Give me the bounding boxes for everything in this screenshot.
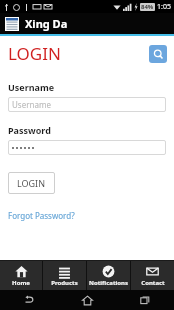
button[interactable]: Home [0, 261, 42, 290]
button[interactable]: Products [43, 261, 86, 290]
button[interactable]: Forgot Password? [8, 210, 75, 221]
button[interactable]: Contact [131, 261, 174, 290]
button[interactable]: Notifications [87, 261, 130, 290]
staticText: Xing Da [25, 16, 68, 31]
staticText: Contact [141, 279, 165, 287]
button[interactable] [8, 140, 166, 155]
staticText: Username [8, 81, 55, 93]
staticText: Products [51, 279, 78, 287]
button[interactable]: Search [149, 45, 167, 63]
button[interactable]: Back [21, 292, 37, 308]
staticText: Home [12, 279, 30, 287]
staticText: 84% [141, 3, 154, 11]
staticText: Notifications [89, 279, 128, 287]
button[interactable]: LOGIN [8, 172, 55, 194]
staticText: Password [8, 124, 51, 136]
staticText: LOGIN [8, 42, 61, 65]
staticText: 1:05 [157, 2, 171, 12]
button[interactable]: Username [8, 97, 166, 112]
staticText: LOGIN [17, 177, 46, 189]
button[interactable]: Recent apps [137, 292, 153, 308]
staticText: Username [12, 99, 51, 110]
staticText: Forgot Password? [8, 210, 75, 221]
button[interactable]: Home [79, 292, 95, 308]
